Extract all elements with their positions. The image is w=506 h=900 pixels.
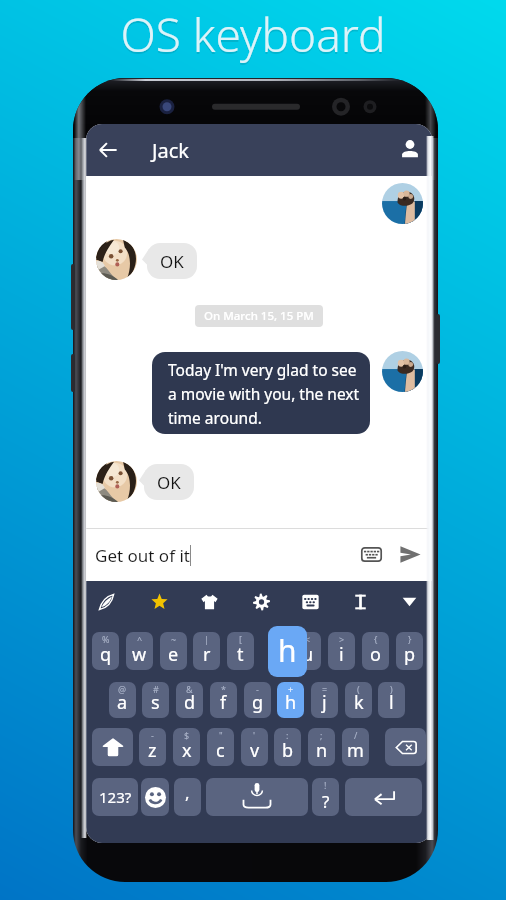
- button[interactable]: ): [378, 682, 405, 718]
- staticText: OK: [160, 250, 184, 273]
- button[interactable]: Emoji: [141, 778, 169, 816]
- staticText: i: [339, 642, 344, 667]
- button[interactable]: Send: [393, 537, 427, 571]
- staticText: +: [288, 683, 294, 695]
- button[interactable]: Switch keyboard: [354, 537, 388, 571]
- button[interactable]: Back: [90, 132, 126, 168]
- staticText: f: [220, 690, 227, 715]
- button[interactable]: }: [396, 632, 423, 670]
- staticText: :: [286, 729, 289, 741]
- button[interactable]: Favorites: [145, 588, 173, 616]
- staticText: j: [322, 690, 327, 715]
- staticText: q: [100, 642, 112, 667]
- staticText: p: [404, 642, 416, 667]
- staticText: ;: [320, 729, 323, 741]
- staticText: @: [118, 683, 127, 695]
- staticText: ~: [171, 633, 177, 645]
- staticText: a: [117, 690, 128, 715]
- button[interactable]: ;: [308, 728, 335, 766]
- button[interactable]: Text cursor: [346, 588, 374, 616]
- button[interactable]: ": [207, 728, 234, 766]
- button[interactable]: ': [241, 728, 268, 766]
- button[interactable]: <: [294, 632, 321, 670]
- staticText: d: [184, 690, 196, 715]
- button[interactable]: Hide keyboard: [395, 588, 423, 616]
- button[interactable]: |: [193, 632, 220, 670]
- staticText: #: [153, 683, 159, 695]
- staticText: x: [182, 738, 192, 763]
- button[interactable]: Themes: [195, 588, 223, 616]
- staticText: -: [256, 683, 259, 695]
- staticText: e: [168, 642, 179, 667]
- staticText: OS keyboard: [0, 5, 506, 68]
- staticText: k: [354, 690, 364, 715]
- staticText: ': [253, 729, 256, 741]
- button[interactable]: Shift: [92, 728, 133, 766]
- button[interactable]: [: [227, 632, 254, 670]
- staticText: ": [219, 729, 223, 741]
- staticText: %: [102, 633, 110, 645]
- staticText: Jack: [152, 137, 189, 164]
- button[interactable]: :: [274, 728, 301, 766]
- button[interactable]: *: [210, 682, 237, 718]
- staticText: ): [390, 683, 393, 695]
- button[interactable]: Comma: [174, 778, 201, 816]
- staticText: h: [278, 630, 297, 671]
- staticText: *: [221, 683, 226, 695]
- button[interactable]: Question mark: [312, 778, 339, 816]
- staticText: [: [239, 633, 242, 645]
- staticText: !: [324, 779, 327, 791]
- staticText: w: [132, 642, 147, 667]
- staticText: Get out of it: [95, 544, 190, 567]
- button[interactable]: Keyboard layout: [296, 588, 324, 616]
- staticText: v: [250, 738, 260, 763]
- staticText: r: [203, 642, 211, 667]
- staticText: -: [151, 729, 154, 741]
- button[interactable]: =: [311, 682, 338, 718]
- staticText: t: [237, 642, 244, 667]
- staticText: h: [285, 690, 297, 715]
- button[interactable]: Contact profile: [392, 131, 428, 167]
- button[interactable]: /: [342, 728, 369, 766]
- staticText: ?: [322, 790, 330, 813]
- staticText: $: [184, 729, 190, 741]
- button[interactable]: Handwriting: [92, 588, 120, 616]
- button[interactable]: >: [328, 632, 355, 670]
- button[interactable]: #: [142, 682, 169, 718]
- staticText: &: [186, 683, 193, 695]
- staticText: ^: [137, 633, 143, 645]
- button[interactable]: -: [244, 682, 271, 718]
- staticText: c: [216, 738, 225, 763]
- button[interactable]: (: [345, 682, 372, 718]
- staticText: z: [148, 738, 157, 763]
- button[interactable]: Space: [206, 778, 308, 816]
- button[interactable]: -: [139, 728, 166, 766]
- button[interactable]: %: [92, 632, 119, 670]
- staticText: On March 15, 15 PM: [204, 308, 314, 324]
- staticText: ,: [185, 781, 190, 804]
- button[interactable]: ^: [126, 632, 153, 670]
- button[interactable]: ~: [160, 632, 187, 670]
- staticText: |: [204, 633, 209, 645]
- button[interactable]: +: [277, 682, 304, 718]
- staticText: {: [374, 633, 378, 645]
- button[interactable]: &: [176, 682, 203, 718]
- staticText: /: [354, 729, 358, 741]
- staticText: =: [322, 683, 328, 695]
- button[interactable]: $: [173, 728, 200, 766]
- staticText: OK: [157, 471, 181, 494]
- staticText: m: [347, 738, 364, 763]
- button[interactable]: @: [109, 682, 136, 718]
- button[interactable]: Settings: [247, 588, 275, 616]
- button[interactable]: {: [362, 632, 389, 670]
- staticText: 123?: [99, 787, 132, 807]
- staticText: >: [339, 633, 345, 645]
- button[interactable]: Backspace: [385, 728, 426, 766]
- button[interactable]: Numbers and symbols: [92, 778, 138, 816]
- staticText: o: [370, 642, 381, 667]
- staticText: s: [151, 690, 160, 715]
- button[interactable]: Enter: [345, 778, 422, 816]
- staticText: (: [357, 683, 360, 695]
- staticText: Today I'm very glad to see a movie with …: [168, 359, 360, 428]
- staticText: <: [305, 633, 311, 645]
